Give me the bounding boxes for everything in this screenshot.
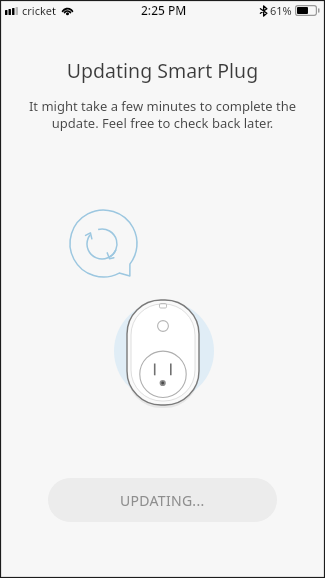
button[interactable]: UPDATING... — [48, 478, 277, 522]
staticText: 61% — [270, 3, 292, 18]
staticText: 2:25 PM — [141, 2, 187, 18]
staticText: cricket — [22, 3, 56, 18]
staticText: UPDATING... — [120, 491, 205, 510]
staticText: It might take a few minutes to complete … — [26, 97, 299, 132]
staticText: Updating Smart Plug — [0, 57, 325, 84]
